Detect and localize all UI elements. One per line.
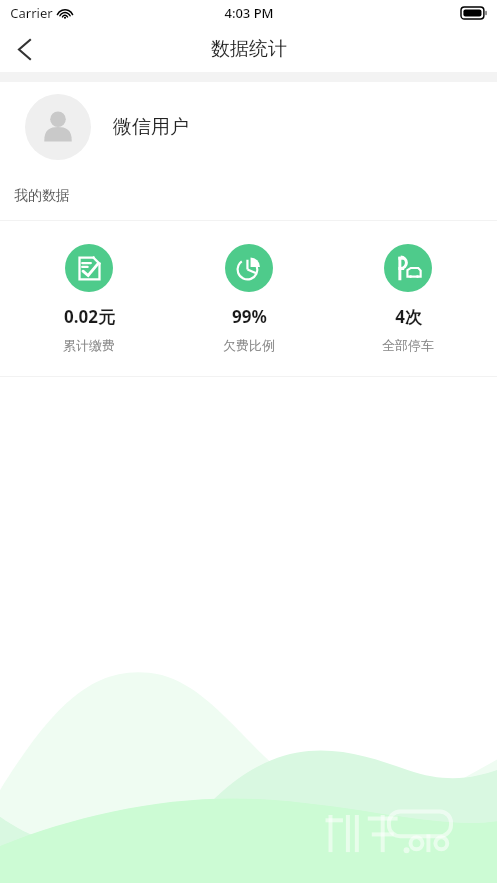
staticText: 4:03 PM <box>224 4 274 22</box>
staticText: 全部停车 <box>382 337 434 353</box>
staticText: 我的数据 <box>14 187 70 205</box>
staticText: 累计缴费 <box>63 337 115 353</box>
staticText: 欠费比例 <box>223 337 275 353</box>
staticText: 微信用户 <box>113 115 189 139</box>
button[interactable]: 4次 <box>338 238 478 359</box>
button[interactable]: 微信用户 <box>0 82 497 172</box>
staticText: Carrier <box>10 4 53 22</box>
button[interactable]: 99% <box>179 238 319 359</box>
staticText: 99% <box>232 305 267 328</box>
staticText: 数据统计 <box>211 37 287 61</box>
button[interactable]: 0.02元 <box>19 238 159 359</box>
staticText: 0.02元 <box>64 305 115 328</box>
staticText: 4次 <box>395 305 422 328</box>
button[interactable]: Back <box>0 26 48 72</box>
